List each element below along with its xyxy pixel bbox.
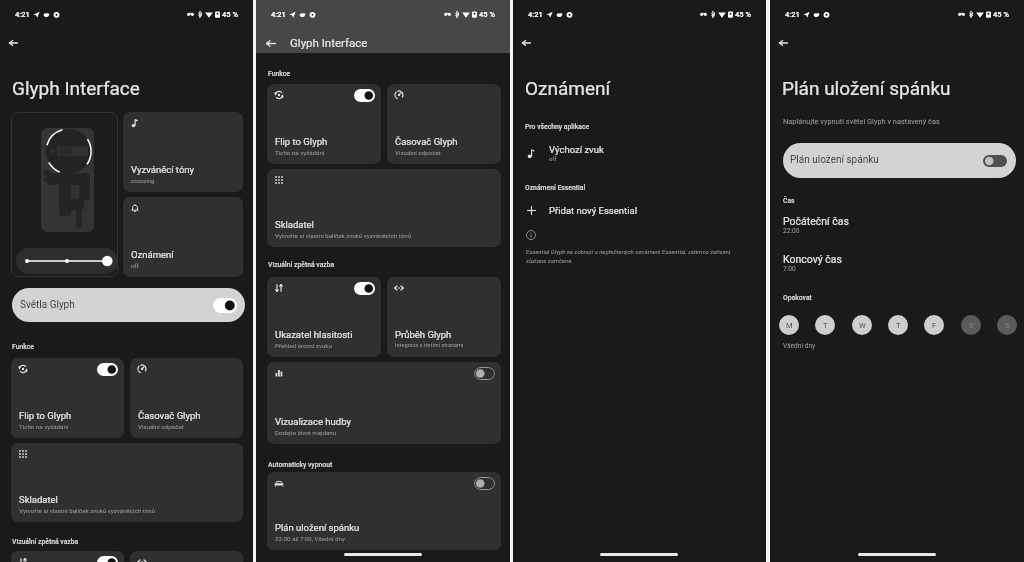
button[interactable]: Back <box>515 32 536 53</box>
staticText: T <box>896 321 901 330</box>
button[interactable]: Vyzváněcí tóny <box>123 112 243 192</box>
staticText: Přidat nový Essential <box>549 205 637 216</box>
button[interactable]: Switch on <box>97 363 118 376</box>
button[interactable]: Počáteční čas <box>770 215 1024 237</box>
staticText: Vizuální zpětná vazba <box>12 538 79 546</box>
staticText: Průběh Glyph <box>395 329 452 340</box>
staticText: Essential Glyph se zobrazí u nepřečtenýc… <box>526 249 748 265</box>
staticText: Vyzváněcí tóny <box>131 164 195 175</box>
button[interactable]: Výchozí zvuk <box>513 138 766 168</box>
staticText: crossing <box>131 177 155 184</box>
staticText: Vytvořte si vlastní balíček zvuků vyzván… <box>275 232 412 239</box>
button[interactable]: Světla Glyph <box>12 288 245 322</box>
staticText: Všední dny <box>783 342 816 350</box>
staticText: Funkce <box>268 70 290 78</box>
staticText: Skladatel <box>275 219 314 230</box>
staticText: F <box>932 321 937 330</box>
staticText: Skladatel <box>19 494 58 505</box>
staticText: M <box>786 321 793 330</box>
staticText: 45 % <box>479 10 495 19</box>
staticText: Flip to Glyph <box>19 410 72 421</box>
staticText: 22:00 až 7:00, Všední dny <box>275 535 345 542</box>
staticText: 45 % <box>222 10 238 19</box>
staticText: Vizuální odpočet <box>395 149 441 156</box>
staticText: Ticho na vyžádání <box>19 423 69 430</box>
staticText: Plán uložení spánku <box>275 522 360 533</box>
staticText: 22:00 <box>783 227 800 235</box>
staticText: Světla Glyph <box>20 299 75 311</box>
button[interactable]: T <box>888 315 908 335</box>
button[interactable]: S <box>961 315 981 335</box>
staticText: Čas <box>783 197 795 205</box>
button[interactable]: W <box>852 315 872 335</box>
button[interactable]: F <box>924 315 944 335</box>
button[interactable]: Koncový čas <box>770 253 1024 275</box>
button[interactable]: Switch on <box>11 551 124 562</box>
staticText: Výchozí zvuk <box>549 144 604 155</box>
staticText: S <box>969 321 974 330</box>
button[interactable]: Switch on <box>267 277 381 357</box>
staticText: off <box>131 262 139 269</box>
button[interactable]: Back <box>2 32 23 53</box>
staticText: 4:21 <box>15 10 30 19</box>
staticText: 7:00 <box>783 265 796 273</box>
button[interactable]: Switch on <box>11 358 124 438</box>
button[interactable]: Skladatel <box>11 443 243 522</box>
staticText: Oznámení <box>131 249 174 260</box>
staticText: 4:21 <box>528 10 543 19</box>
button[interactable]: Brightness <box>11 112 118 277</box>
button[interactable]: Časovač Glyph <box>387 84 501 164</box>
staticText: Plán uložení spánku <box>782 77 951 99</box>
staticText: Funkce <box>12 343 34 351</box>
staticText: Dodejte život mejdanu <box>275 429 337 436</box>
staticText: Ukazatel hlasitosti <box>275 329 353 340</box>
button[interactable]: Switch on <box>267 84 381 164</box>
staticText: Plán uložení spánku <box>790 154 879 166</box>
button[interactable]: Průběh Glyph <box>387 277 501 357</box>
staticText: Vizualizace hudby <box>275 416 351 427</box>
button[interactable]: T <box>815 315 835 335</box>
button[interactable]: Switch off <box>474 367 495 380</box>
button[interactable]: Časovač Glyph <box>130 358 243 438</box>
button[interactable]: S <box>997 315 1017 335</box>
button[interactable]: Back <box>264 32 284 52</box>
staticText: Oznámení <box>525 77 611 99</box>
button[interactable]: M <box>779 315 799 335</box>
staticText: W <box>859 321 866 330</box>
button[interactable]: Skladatel <box>267 169 501 247</box>
staticText: Integrace s třetími stranami <box>395 342 464 349</box>
staticText: 45 % <box>993 10 1009 19</box>
button[interactable]: Switch on <box>213 298 237 313</box>
button[interactable]: Brightness <box>16 248 118 274</box>
staticText: 4:21 <box>785 10 800 19</box>
staticText: 4:21 <box>271 10 286 19</box>
button[interactable]: Oznámení <box>123 197 243 277</box>
staticText: Pro všechny aplikace <box>525 123 590 131</box>
button[interactable]: Přidat nový Essential <box>513 198 766 222</box>
button[interactable]: Switch off <box>267 472 501 550</box>
button[interactable]: Back <box>772 32 793 53</box>
button[interactable]: Průběh Glyph <box>130 551 243 562</box>
staticText: Oznámení Essential <box>525 184 586 192</box>
button[interactable]: Switch on <box>354 89 375 102</box>
staticText: Glyph Interface <box>12 77 140 99</box>
staticText: Opakovat <box>783 294 812 302</box>
staticText: Počáteční čas <box>783 215 849 227</box>
staticText: Časovač Glyph <box>138 410 201 421</box>
button[interactable]: Switch off <box>474 477 495 490</box>
button[interactable]: Plán uložení spánku <box>783 143 1016 178</box>
button[interactable]: Switch off <box>267 362 501 444</box>
staticText: Časovač Glyph <box>395 136 458 147</box>
button[interactable]: Switch on <box>97 556 118 562</box>
staticText: 45 % <box>735 10 751 19</box>
staticText: S <box>1005 321 1010 330</box>
staticText: Koncový čas <box>783 253 842 265</box>
staticText: Vizuální odpočet <box>138 423 184 430</box>
staticText: Naplánujte vypnutí světel Glyph v nastav… <box>783 117 940 126</box>
staticText: off <box>549 155 557 162</box>
staticText: T <box>823 321 828 330</box>
staticText: Glyph Interface <box>290 36 368 49</box>
staticText: Automaticky vypnout <box>268 461 333 469</box>
button[interactable]: Switch on <box>354 282 375 295</box>
button[interactable]: Switch off <box>983 155 1007 167</box>
